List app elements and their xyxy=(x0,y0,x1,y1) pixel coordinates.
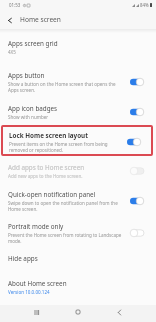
button[interactable]: Apps screen grid xyxy=(0,33,156,65)
staticText: Add apps to Home screen xyxy=(8,163,85,172)
staticText: Show a button on the Home screen that op… xyxy=(8,81,116,93)
button[interactable]: Hide apps xyxy=(0,247,156,273)
staticText: 4X5 xyxy=(8,49,16,55)
button[interactable]: Toggle on xyxy=(127,138,141,146)
staticText: Prevent the Home screen from rotating to… xyxy=(8,232,122,244)
staticText: Version 10.0.00.124 xyxy=(8,289,50,295)
staticText: Show with number xyxy=(8,114,49,120)
staticText: Home screen xyxy=(20,15,61,24)
button[interactable]: Apps button xyxy=(0,65,156,98)
staticText: Swipe down to open the notification pane… xyxy=(8,200,118,212)
button[interactable]: Back xyxy=(4,13,15,27)
staticText: App icon badges xyxy=(8,104,58,113)
staticText: Lock Home screen layout xyxy=(9,131,88,140)
staticText: Quick-open notification panel xyxy=(8,190,96,199)
staticText: Prevent items on the Home screen from be… xyxy=(9,141,108,153)
button[interactable]: Back xyxy=(106,305,132,322)
button[interactable]: Home xyxy=(65,305,91,322)
staticText: Hide apps xyxy=(8,254,38,263)
staticText: Apps screen grid xyxy=(8,39,58,48)
button[interactable]: Add apps to Home screen xyxy=(0,157,156,183)
button[interactable]: Quick-open notification panel xyxy=(0,183,156,215)
button[interactable]: Portrait mode only xyxy=(0,215,156,247)
button[interactable]: Recents xyxy=(24,305,50,322)
staticText: Portrait mode only xyxy=(8,222,64,231)
button[interactable]: Toggle off xyxy=(130,167,144,175)
staticText: About Home screen xyxy=(8,279,67,288)
staticText: 84% xyxy=(140,2,149,8)
staticText: Apps button xyxy=(8,71,45,80)
button[interactable]: Lock Home screen layout xyxy=(1,125,153,156)
button[interactable]: Toggle on xyxy=(130,78,144,86)
button[interactable]: About Home screen xyxy=(0,273,156,297)
button[interactable]: Toggle on xyxy=(130,108,144,116)
staticText: 01:53 xyxy=(9,2,21,8)
button[interactable]: Toggle off xyxy=(130,229,144,237)
button[interactable]: Toggle on xyxy=(130,197,144,205)
staticText: Add new apps to the Home screen. xyxy=(8,173,83,179)
button[interactable]: App icon badges xyxy=(0,98,156,125)
